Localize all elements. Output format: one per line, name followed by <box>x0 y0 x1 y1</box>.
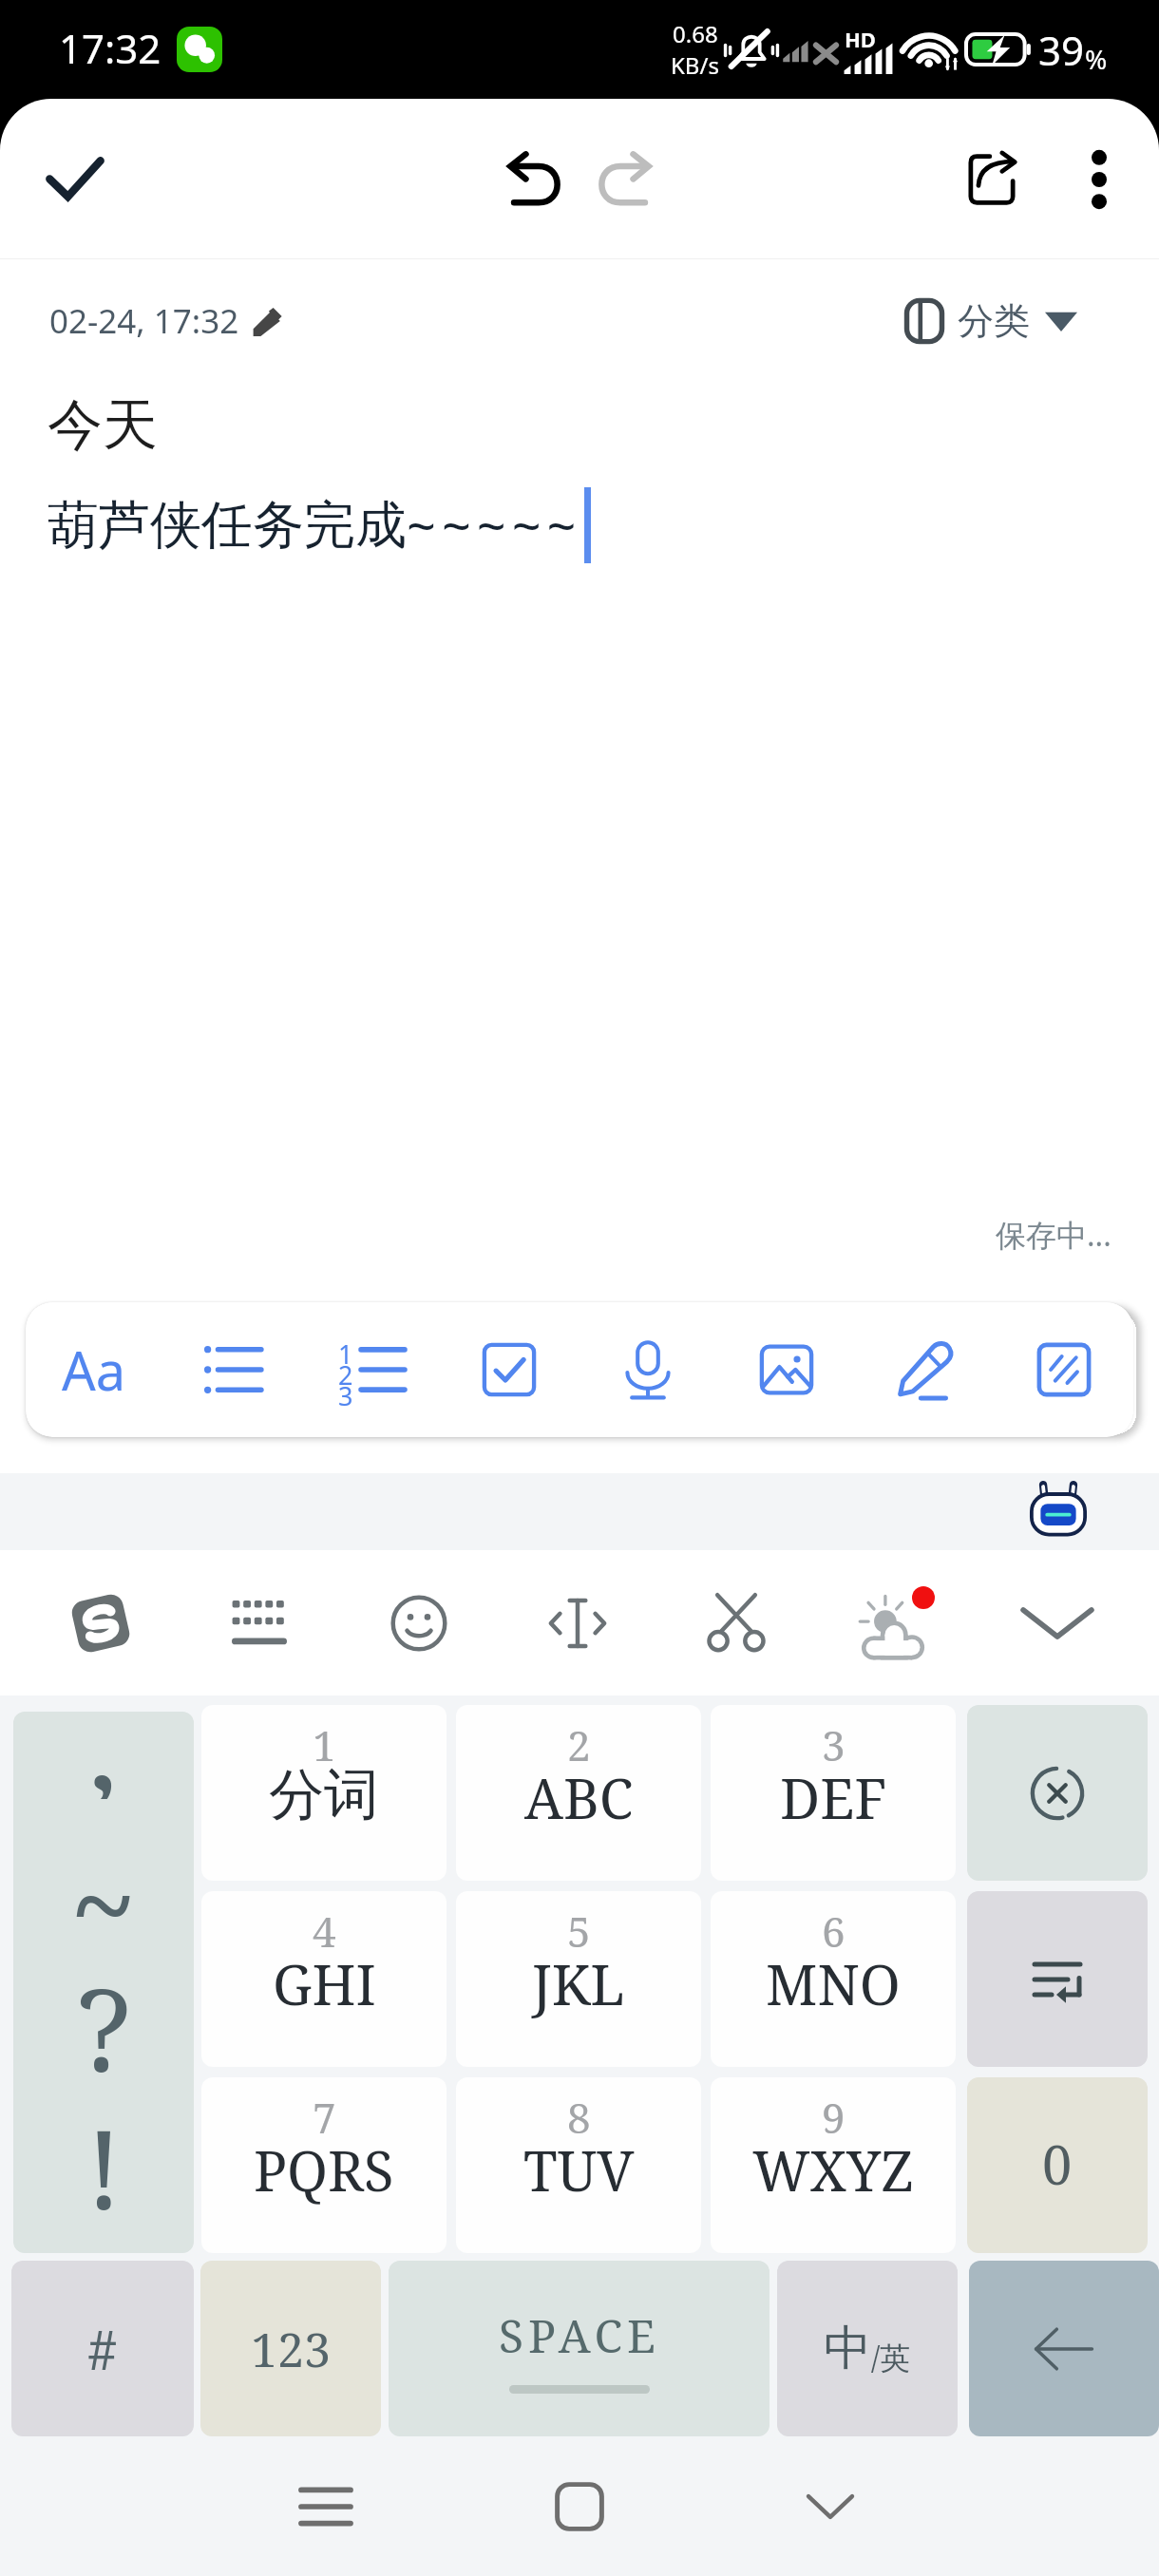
staticText: SPACE <box>499 2304 660 2366</box>
button[interactable]: Draw <box>880 1302 971 1437</box>
staticText: 02-24, 17:32 <box>49 298 239 344</box>
button[interactable]: 3 <box>711 1705 956 1881</box>
button[interactable]: 6 <box>711 1891 956 2067</box>
button[interactable]: Clipboard <box>684 1550 788 1695</box>
button[interactable]: Emoji <box>367 1550 471 1695</box>
button[interactable]: Checklist <box>464 1302 555 1437</box>
button[interactable]: # <box>11 2261 194 2436</box>
staticText: TUV <box>523 2132 635 2207</box>
staticText: HD <box>845 25 876 53</box>
button[interactable]: Hide keyboard <box>764 2436 897 2576</box>
button[interactable]: Insert image <box>741 1302 832 1437</box>
button[interactable]: 分类 <box>899 289 1083 353</box>
button[interactable]: Hide keyboard <box>1005 1550 1110 1695</box>
button[interactable]: 123 <box>200 2261 381 2436</box>
button[interactable]: Text style <box>48 1302 140 1437</box>
staticText: , <box>88 1712 119 1799</box>
button[interactable]: 1 <box>201 1705 446 1881</box>
staticText: 7 <box>313 2089 336 2146</box>
button[interactable]: 4 <box>201 1891 446 2067</box>
staticText: 8 <box>567 2089 591 2146</box>
button[interactable]: 中 <box>777 2261 958 2436</box>
button[interactable]: Keyboard layout <box>207 1550 312 1695</box>
staticText: DEF <box>780 1760 887 1835</box>
staticText: 1 <box>338 1336 353 1372</box>
staticText: 葫芦侠任务完成 <box>47 493 407 558</box>
staticText: 9 <box>822 2089 845 2146</box>
staticText: ~ <box>70 1823 137 1958</box>
button[interactable]: Backspace <box>967 1705 1148 1881</box>
staticText: % <box>1085 41 1108 77</box>
staticText: 6 <box>822 1903 845 1960</box>
staticText: 3 <box>822 1716 845 1773</box>
staticText: 0 <box>1042 2128 1073 2200</box>
staticText: MNO <box>766 1946 901 2021</box>
staticText: # <box>87 2313 118 2385</box>
button[interactable]: Redo <box>576 132 671 227</box>
button[interactable]: Bulleted list <box>187 1302 278 1437</box>
staticText: 5 <box>567 1903 591 1960</box>
button[interactable]: Handwriting <box>1018 1302 1110 1437</box>
button[interactable]: 7 <box>201 2077 446 2253</box>
button[interactable]: Enter <box>967 1891 1148 2067</box>
staticText: 39 <box>1038 23 1085 77</box>
staticText: 0.68 <box>673 18 718 49</box>
button[interactable]: 8 <box>456 2077 701 2253</box>
staticText: Aa <box>62 1334 126 1406</box>
staticText: 2 <box>567 1716 591 1773</box>
staticText: GHI <box>273 1946 376 2021</box>
staticText: ~~~~~ <box>407 490 582 560</box>
button[interactable]: Numbered list <box>325 1302 416 1437</box>
button[interactable]: 5 <box>456 1891 701 2067</box>
staticText: ABC <box>524 1760 634 1835</box>
staticText: PQRS <box>254 2132 394 2207</box>
staticText: 3 <box>338 1378 353 1413</box>
staticText: KB/s <box>671 49 719 81</box>
button[interactable]: 0 <box>967 2077 1148 2253</box>
button[interactable]: Back <box>969 2261 1159 2436</box>
button[interactable]: Sogou input method <box>48 1550 153 1695</box>
staticText: 1 <box>313 1716 336 1773</box>
button[interactable]: More options <box>1056 137 1142 222</box>
button[interactable]: Done <box>23 127 127 232</box>
staticText: 中 <box>824 2319 871 2378</box>
staticText: WXYZ <box>752 2132 914 2207</box>
button[interactable]: SPACE <box>389 2261 769 2436</box>
button[interactable]: Weather <box>842 1550 946 1695</box>
staticText: 4 <box>313 1903 336 1960</box>
staticText: ! <box>85 2092 123 2226</box>
staticText: 保存中... <box>996 1214 1111 1256</box>
staticText: /英 <box>871 2337 911 2378</box>
button[interactable]: AI assistant <box>1022 1476 1094 1548</box>
staticText: 2 <box>338 1357 353 1392</box>
staticText: ? <box>77 1950 131 2085</box>
button[interactable]: Undo <box>488 132 583 227</box>
staticText: 今天 <box>47 390 158 460</box>
staticText: 分类 <box>958 298 1030 344</box>
button[interactable]: 2 <box>456 1705 701 1881</box>
staticText: 分词 <box>269 1760 379 1829</box>
button[interactable]: Voice input <box>602 1302 693 1437</box>
staticText: 123 <box>251 2317 331 2381</box>
staticText: 17:32 <box>59 21 161 75</box>
button[interactable]: Share <box>944 132 1039 227</box>
button[interactable]: Home <box>513 2436 646 2576</box>
button[interactable]: Recents <box>259 2436 392 2576</box>
button[interactable]: 9 <box>711 2077 956 2253</box>
staticText: JKL <box>532 1946 625 2021</box>
button[interactable]: Punctuation <box>13 1712 194 2253</box>
button[interactable]: Edit text <box>525 1550 630 1695</box>
